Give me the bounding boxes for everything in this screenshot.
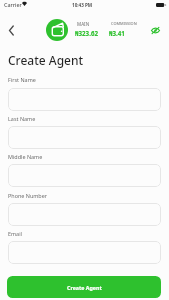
staticText: Middle Name <box>8 153 43 160</box>
staticText: Last Name <box>8 115 36 122</box>
staticText: Carrier <box>4 1 22 8</box>
button[interactable] <box>8 88 161 111</box>
button[interactable]: Hide balance <box>148 23 162 37</box>
staticText: First Name <box>8 76 36 83</box>
button[interactable] <box>8 164 161 187</box>
staticText: MAIN <box>77 21 90 27</box>
staticText: Email <box>8 230 22 237</box>
button[interactable]: Wallet <box>46 19 68 41</box>
button[interactable] <box>8 203 161 226</box>
button[interactable] <box>8 241 161 264</box>
staticText: 10:43 PM <box>72 2 93 8</box>
button[interactable]: Back <box>4 23 19 38</box>
staticText: Create Agent <box>67 284 102 291</box>
button[interactable]: Create Agent <box>7 276 161 298</box>
staticText: COMMISSION <box>111 21 137 26</box>
button[interactable] <box>8 126 161 149</box>
staticText: ₦3.41 <box>109 29 125 37</box>
staticText: ₦323.62 <box>75 29 98 37</box>
staticText: Create Agent <box>8 52 84 68</box>
staticText: Phone Number <box>8 192 48 199</box>
